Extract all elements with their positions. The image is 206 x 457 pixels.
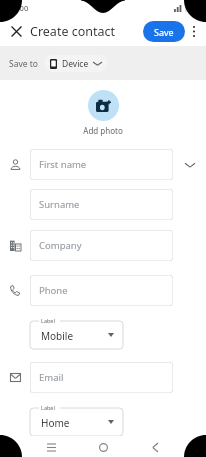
button[interactable]: Label [30,404,123,436]
button[interactable]: Label [30,317,123,349]
staticText: Mobile [41,329,74,343]
button[interactable]: Home [93,437,113,457]
staticText: Company [39,239,82,252]
button[interactable]: Recent apps [41,437,61,457]
staticText: First name [39,158,87,171]
button[interactable]: Add photo [0,90,206,136]
staticText: Surname [39,198,80,211]
button[interactable]: Device [44,55,108,72]
staticText: Add photo [83,125,123,136]
staticText: Home [41,416,70,430]
staticText: Device [62,58,89,70]
button[interactable]: Close [7,22,25,40]
staticText: 10:00 [9,3,29,13]
button[interactable]: Phone [30,275,173,306]
button[interactable]: Expand name fields [181,156,199,174]
staticText: Email [39,371,64,384]
staticText: Label [41,317,55,324]
button[interactable]: Email [30,362,173,393]
button[interactable]: Company [30,230,173,261]
staticText: Label [41,404,55,411]
button[interactable]: Surname [30,189,173,220]
button[interactable]: Save [143,21,185,42]
button[interactable]: First name [30,149,173,180]
staticText: Create contact [30,23,116,40]
button[interactable]: Back [145,437,165,457]
staticText: Save [154,26,174,38]
button[interactable]: More options [186,23,202,39]
staticText: Save to [9,58,38,70]
staticText: Phone [39,284,68,297]
